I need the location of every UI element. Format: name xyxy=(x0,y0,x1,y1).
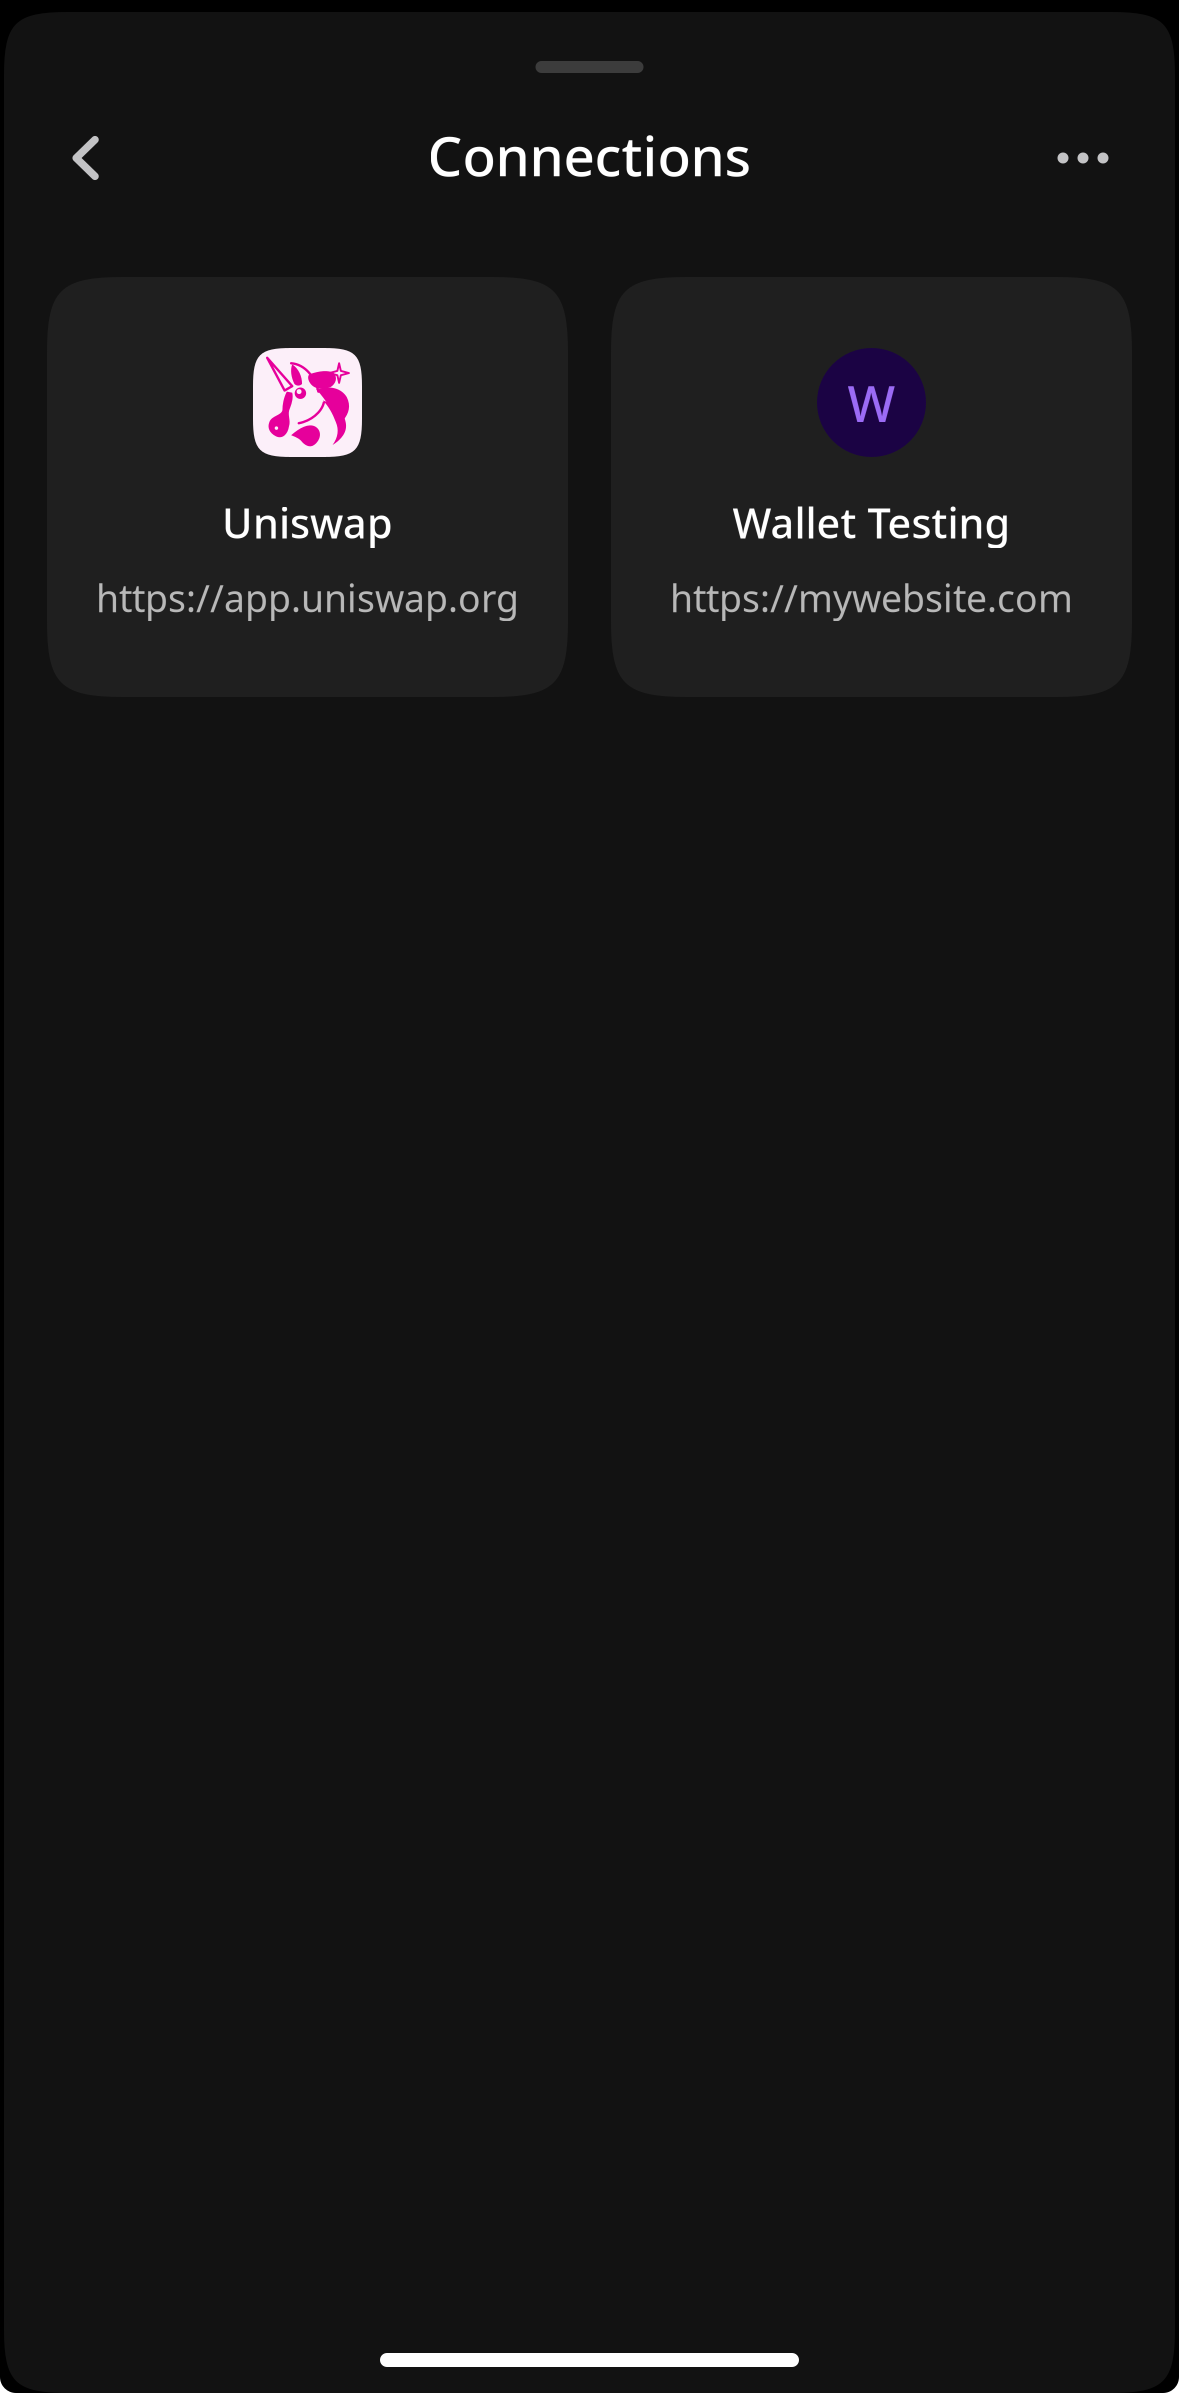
button[interactable]: Wallet Testing, https://mywebsite.com xyxy=(611,277,1132,697)
staticText: https://app.uniswap.org xyxy=(96,573,519,622)
button[interactable]: Uniswap, https://app.uniswap.org xyxy=(47,277,568,697)
staticText: Uniswap xyxy=(222,495,393,550)
button[interactable]: More options xyxy=(1041,119,1125,191)
staticText: Connections xyxy=(427,119,751,191)
staticText: W xyxy=(847,369,895,436)
button[interactable]: Back xyxy=(44,119,128,191)
staticText: Wallet Testing xyxy=(732,495,1010,550)
staticText: https://mywebsite.com xyxy=(670,573,1073,622)
